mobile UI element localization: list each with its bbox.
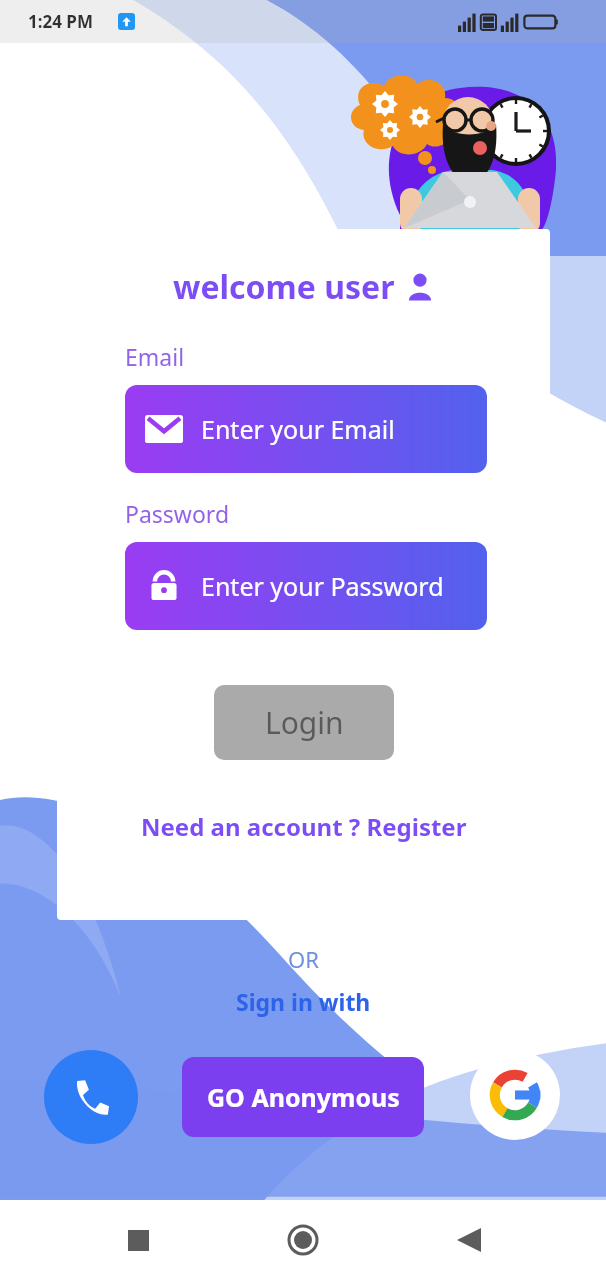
staticText: Login — [265, 702, 344, 743]
staticText: Email — [125, 341, 185, 372]
staticText: Password — [125, 498, 230, 529]
button[interactable]: Need an account ? Register — [135, 804, 473, 849]
staticText: GO Anonymous — [207, 1080, 400, 1114]
button[interactable]: Home — [275, 1212, 331, 1268]
staticText: 1:24 PM — [28, 10, 93, 33]
button[interactable]: Enter your Password — [125, 542, 487, 630]
staticText: welcome user — [173, 265, 395, 309]
button[interactable]: Call — [44, 1050, 138, 1144]
staticText: Sign in with — [236, 986, 371, 1017]
staticText: Enter your Email — [201, 412, 395, 446]
staticText: OR — [288, 944, 319, 974]
button[interactable]: Recent apps — [110, 1212, 166, 1268]
button[interactable]: GO Anonymous — [182, 1057, 424, 1137]
button[interactable]: Sign in with Google — [470, 1050, 560, 1140]
staticText: Enter your Password — [201, 569, 444, 603]
button[interactable]: Enter your Email — [125, 385, 487, 473]
staticText: Need an account ? Register — [141, 810, 467, 843]
button[interactable]: Back — [441, 1212, 497, 1268]
button[interactable]: Login — [214, 685, 394, 760]
